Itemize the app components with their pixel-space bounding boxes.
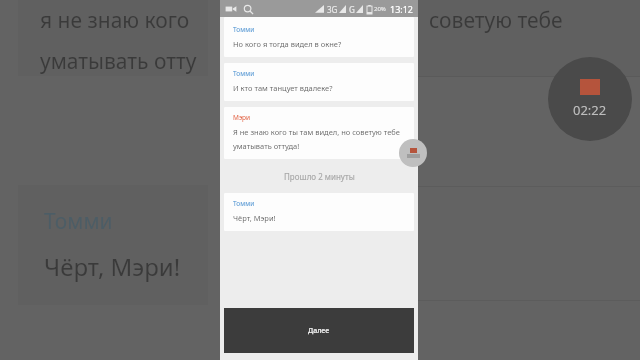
other: Video bbox=[225, 3, 237, 15]
staticText: уматывать отту bbox=[40, 47, 197, 76]
staticText: Томми bbox=[233, 25, 255, 34]
staticText: Но кого я тогда видел в окне? bbox=[233, 39, 342, 49]
staticText: Чёрт, Мэри! bbox=[44, 250, 181, 283]
button[interactable]: Мэри bbox=[224, 107, 414, 159]
button[interactable]: Томми bbox=[224, 63, 414, 101]
other: Search bbox=[243, 4, 254, 15]
staticText: я не знаю кого bbox=[40, 6, 190, 35]
staticText: Чёрт, Мэри! bbox=[233, 213, 276, 223]
staticText: G bbox=[349, 4, 355, 15]
staticText: Томми bbox=[44, 207, 113, 236]
staticText: И кто там танцует вдалеке? bbox=[233, 83, 333, 93]
staticText: 20% bbox=[374, 5, 386, 13]
button[interactable]: Томми bbox=[224, 193, 414, 231]
staticText: Я не знаю кого ты там видел, но советую … bbox=[233, 127, 400, 137]
button[interactable]: Далее bbox=[224, 308, 414, 353]
button[interactable]: Recording indicator bbox=[399, 139, 427, 167]
button[interactable]: Recording timer bbox=[548, 57, 632, 141]
staticText: 3G bbox=[327, 4, 338, 15]
staticText: Томми bbox=[233, 199, 255, 208]
staticText: Далее bbox=[308, 326, 330, 336]
button[interactable]: Томми bbox=[224, 17, 414, 57]
staticText: уматывать оттуда! bbox=[233, 141, 300, 151]
staticText: Прошло 2 минуты bbox=[284, 171, 355, 182]
staticText: Томми bbox=[233, 69, 255, 78]
staticText: 02:22 bbox=[573, 101, 607, 119]
staticText: 13:12 bbox=[390, 3, 414, 15]
staticText: Мэри bbox=[233, 113, 251, 122]
staticText: советую тебе bbox=[418, 6, 563, 35]
